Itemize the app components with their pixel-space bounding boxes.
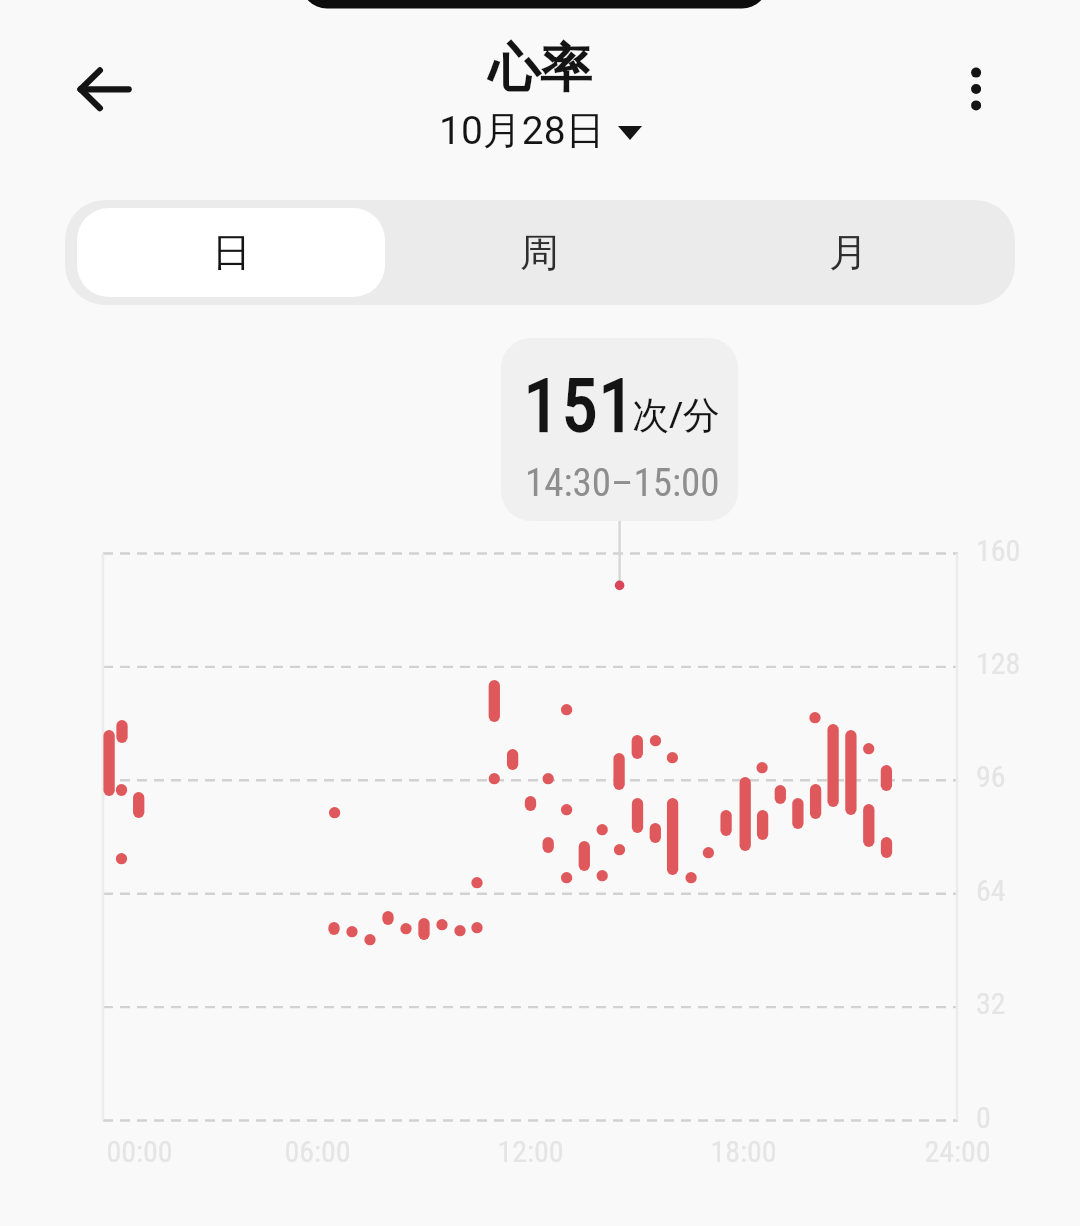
button[interactable]: Back	[54, 42, 150, 138]
staticText: 128	[976, 646, 1021, 681]
staticText: 06:00	[284, 1134, 351, 1169]
staticText: 151	[524, 364, 637, 448]
button[interactable]: 月	[694, 208, 1003, 297]
staticText: 24:00	[924, 1134, 991, 1169]
staticText: 18:00	[710, 1134, 777, 1169]
staticText: 14:30–15:00	[525, 460, 720, 506]
staticText: 12:00	[497, 1134, 564, 1169]
staticText: 10月28日	[439, 106, 605, 155]
button[interactable]: 10月28日	[439, 106, 642, 155]
button[interactable]: 日	[77, 208, 385, 297]
staticText: 00:00	[106, 1134, 173, 1169]
staticText: 日	[212, 228, 251, 277]
staticText: 次/分	[632, 388, 720, 439]
staticText: 32	[976, 986, 1006, 1021]
staticText: 0	[976, 1100, 991, 1135]
staticText: 160	[976, 533, 1021, 568]
button[interactable]: More options	[930, 44, 1020, 134]
staticText: 心率	[488, 36, 592, 102]
button[interactable]: 151	[501, 338, 738, 521]
staticText: 96	[976, 759, 1006, 794]
staticText: 周	[520, 228, 559, 277]
staticText: 64	[976, 873, 1006, 908]
button[interactable]: 周	[385, 208, 694, 297]
staticText: 月	[829, 228, 868, 277]
